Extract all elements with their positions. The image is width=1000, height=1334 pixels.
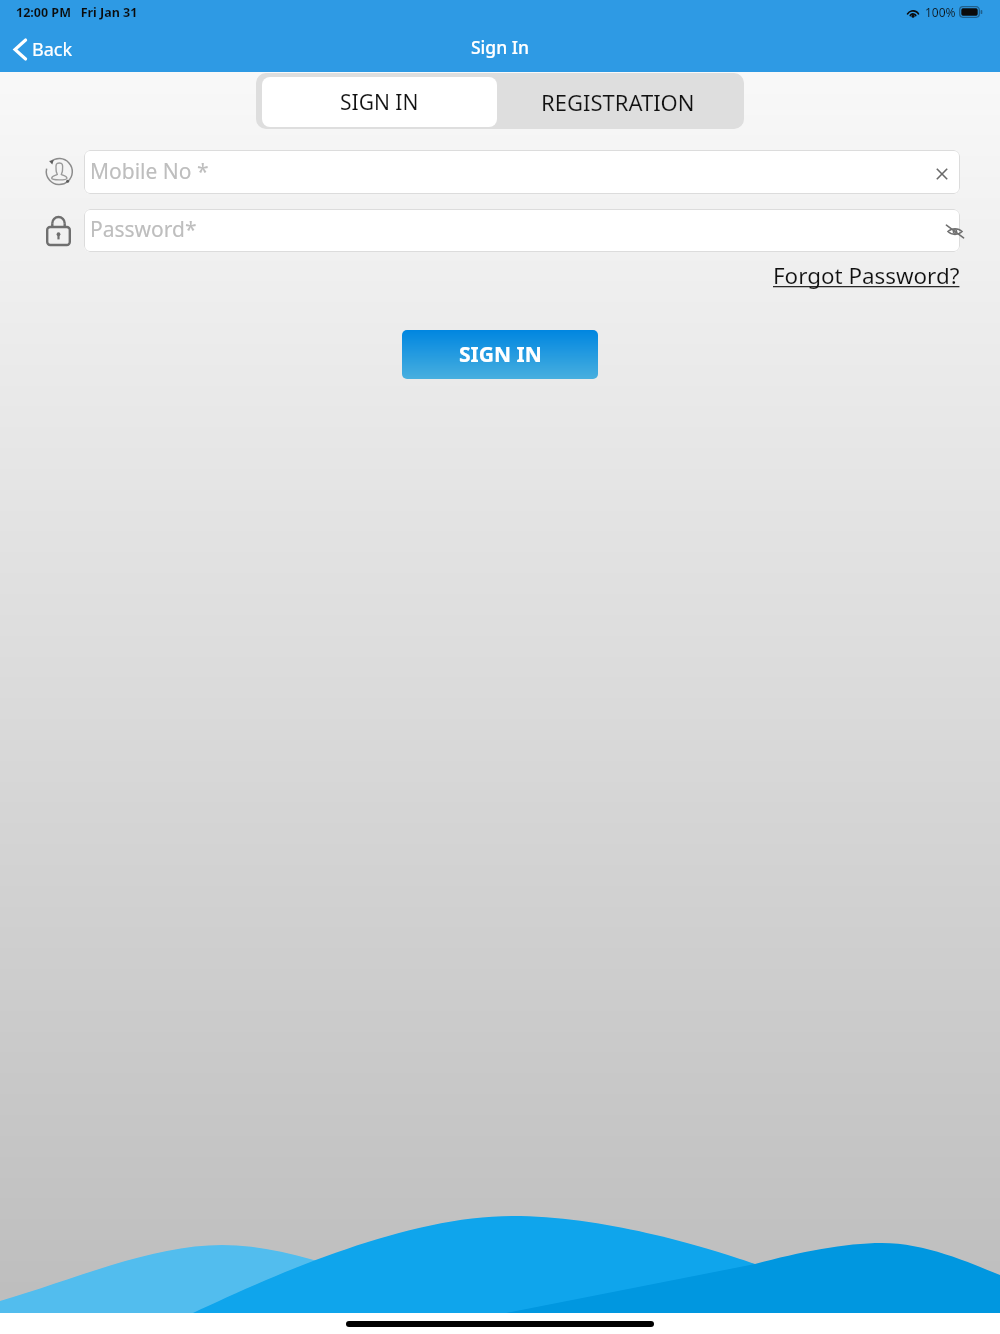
staticText: REGISTRATION: [541, 87, 695, 117]
other: Password: [46, 215, 71, 246]
staticText: SIGN IN: [340, 88, 419, 117]
staticText: Password*: [90, 215, 930, 244]
staticText: 12:00 PM Fri Jan 31: [16, 4, 138, 21]
staticText: 100%: [925, 4, 956, 20]
button[interactable]: Password*: [84, 209, 960, 252]
button[interactable]: SIGN IN: [262, 77, 497, 127]
button[interactable]: Mobile No *: [84, 150, 960, 194]
button[interactable]: Back: [0, 26, 87, 72]
other: User: [44, 155, 75, 187]
staticText: Back: [32, 37, 73, 62]
staticText: Sign In: [471, 35, 529, 59]
button[interactable]: Forgot Password?: [760, 258, 960, 294]
staticText: Mobile No *: [90, 157, 920, 186]
button[interactable]: REGISTRATION: [497, 77, 738, 127]
button[interactable]: SIGN IN: [402, 330, 598, 379]
button[interactable]: Show password: [939, 216, 971, 246]
staticText: Forgot Password?: [773, 260, 960, 291]
staticText: SIGN IN: [459, 340, 542, 369]
button[interactable]: Clear: [920, 152, 960, 192]
